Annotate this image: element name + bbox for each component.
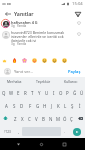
button[interactable]: F — [26, 99, 34, 112]
button[interactable]: E — [15, 86, 22, 99]
button[interactable]: O — [57, 86, 64, 99]
staticText: L — [64, 103, 67, 109]
staticText: . — [64, 129, 66, 134]
staticText: I — [53, 90, 55, 96]
staticText: J — [51, 103, 53, 109]
button[interactable]: Q — [0, 86, 8, 99]
staticText: Paylaş — [68, 69, 81, 74]
staticText: Ç — [70, 116, 73, 122]
button[interactable]: V — [33, 112, 40, 125]
button[interactable]: Back — [13, 139, 23, 149]
button[interactable]: A — [2, 99, 10, 112]
staticText: U — [45, 90, 49, 96]
button[interactable]: Merhaba — [0, 77, 29, 86]
staticText: F — [29, 103, 32, 109]
button[interactable]: L — [62, 99, 69, 112]
button[interactable]: D — [18, 99, 26, 112]
button[interactable]: hafiyeahm 4 G — [1, 19, 83, 28]
staticText: hafiyeahm 4 G — [11, 20, 38, 24]
staticText: N — [49, 116, 53, 122]
staticText: ilginizdir çok iyi — [11, 38, 37, 42]
staticText: X — [21, 116, 24, 122]
button[interactable]: Ş — [69, 99, 76, 112]
staticText: Ü — [80, 90, 84, 96]
staticText: M — [56, 116, 60, 122]
staticText: Ö — [63, 116, 67, 122]
button[interactable]: J — [48, 99, 55, 112]
staticText: Ğ — [73, 90, 77, 96]
staticText: 3g Yanıtla — [11, 24, 27, 28]
button[interactable]: U — [43, 86, 50, 99]
button[interactable]: X — [19, 112, 26, 125]
staticText: A — [5, 103, 8, 109]
button[interactable]: T — [29, 86, 36, 99]
button[interactable]: huseyin8723 Benimle konuşmak — [1, 30, 83, 46]
staticText: 15:04 — [72, 1, 83, 7]
button[interactable]: Shift — [0, 112, 11, 125]
button[interactable]: Emoji — [1, 57, 8, 64]
button[interactable]: Like — [75, 21, 83, 27]
staticText: S — [13, 103, 16, 109]
button[interactable]: Ç — [68, 112, 75, 125]
staticText: B — [42, 116, 45, 122]
staticText: Z — [14, 116, 17, 122]
button[interactable]: I — [50, 86, 57, 99]
button[interactable]: Emoji — [51, 57, 58, 64]
button[interactable]: W — [8, 86, 15, 99]
button[interactable]: R — [22, 86, 29, 99]
button[interactable]: Teşekkür — [29, 77, 57, 86]
button[interactable]: Ü — [78, 86, 85, 99]
staticText: V — [35, 116, 38, 122]
button[interactable]: B — [40, 112, 47, 125]
button[interactable]: İ — [76, 99, 83, 112]
staticText: Teşekkür — [36, 79, 51, 84]
button[interactable]: M — [54, 112, 61, 125]
staticText: Ş — [71, 103, 74, 109]
staticText: D — [20, 103, 24, 109]
button[interactable]: Recents — [59, 139, 69, 149]
staticText: H — [43, 103, 47, 109]
button[interactable]: Ğ — [71, 86, 78, 99]
button[interactable]: Fire — [11, 57, 18, 64]
button[interactable]: Emoji — [61, 57, 68, 64]
button[interactable]: Send — [68, 125, 85, 138]
staticText: E — [17, 90, 20, 96]
staticText: huseyin8723 Benimle konuşmak — [11, 30, 65, 34]
button[interactable]: Like — [75, 32, 83, 38]
button[interactable]: C — [26, 112, 33, 125]
button[interactable]: N — [47, 112, 54, 125]
button[interactable]: Y — [36, 86, 43, 99]
button[interactable]: S — [10, 99, 18, 112]
staticText: G — [36, 103, 40, 109]
staticText: W — [9, 90, 14, 96]
staticText: T — [31, 90, 34, 96]
button[interactable]: Emoji — [41, 57, 48, 64]
button[interactable]: ?123 — [0, 125, 15, 138]
button[interactable]: Paylaş — [67, 69, 82, 74]
button[interactable]: P — [64, 86, 71, 99]
button[interactable]: Emoji — [31, 57, 38, 64]
button[interactable]: Ö — [61, 112, 68, 125]
staticText: Kullanıcı — [64, 79, 78, 84]
staticText: İ — [79, 103, 81, 109]
button[interactable]: Back — [3, 9, 12, 18]
staticText: Yanıt ver... — [14, 69, 67, 74]
button[interactable]: G — [34, 99, 41, 112]
staticText: Merhaba — [7, 79, 22, 84]
button[interactable]: Comma — [15, 125, 22, 138]
button[interactable]: Home — [36, 139, 46, 149]
button[interactable]: K — [55, 99, 62, 112]
staticText: ?123 — [4, 130, 11, 134]
staticText: P — [66, 90, 69, 96]
staticText: O — [59, 90, 63, 96]
button[interactable]: Z — [11, 112, 19, 125]
button[interactable]: Flower — [21, 57, 28, 64]
staticText: , — [18, 129, 20, 134]
button[interactable]: H — [41, 99, 48, 112]
button[interactable]: Kullanıcı — [57, 77, 85, 86]
staticText: R — [24, 90, 27, 96]
button[interactable]: Backspace — [75, 112, 85, 125]
button[interactable]: Share — [73, 9, 82, 18]
